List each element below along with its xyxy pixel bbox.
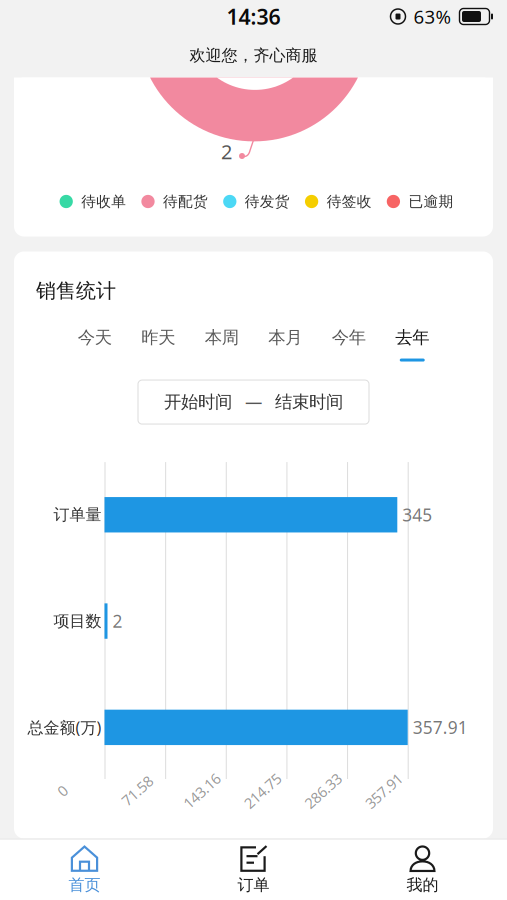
staticText: 357.91 <box>362 781 406 801</box>
staticText: 待配货 <box>163 192 208 210</box>
staticText: 357.91 <box>413 716 468 739</box>
button[interactable]: 本周 <box>190 324 253 364</box>
staticText: 本月 <box>268 327 302 348</box>
button[interactable]: 昨天 <box>126 324 190 364</box>
button[interactable]: 首页 <box>0 839 169 900</box>
button[interactable]: 去年 <box>380 324 444 364</box>
staticText: 14:36 <box>226 2 280 31</box>
staticText: 71.58 <box>119 781 155 801</box>
staticText: 开始时间 <box>164 391 232 413</box>
staticText: 214.75 <box>240 781 284 801</box>
staticText: 首页 <box>68 875 100 895</box>
staticText: 0 <box>58 781 66 801</box>
staticText: 今天 <box>78 327 112 348</box>
staticText: 销售统计 <box>36 278 116 303</box>
staticText: 2 <box>221 138 232 165</box>
staticText: 63% <box>413 4 451 29</box>
button[interactable]: 我的 <box>338 839 507 900</box>
staticText: 待收单 <box>81 192 126 210</box>
staticText: 2 <box>112 610 122 633</box>
staticText: 结束时间 <box>275 391 343 413</box>
staticText: 总金额(万) <box>27 717 101 738</box>
staticText: 345 <box>402 503 432 526</box>
button[interactable]: 今年 <box>317 324 380 364</box>
staticText: 订单 <box>237 875 269 895</box>
staticText: 我的 <box>406 875 438 895</box>
staticText: 本周 <box>205 327 239 348</box>
staticText: 今年 <box>332 327 366 348</box>
staticText: 143.16 <box>180 781 224 801</box>
button[interactable]: 本月 <box>253 324 317 364</box>
staticText: 已逾期 <box>408 192 453 210</box>
staticText: 欢迎您，齐心商服 <box>189 46 317 65</box>
staticText: 项目数 <box>53 611 101 631</box>
staticText: 待签收 <box>327 192 372 210</box>
staticText: — <box>245 391 262 414</box>
button[interactable]: 订单 <box>169 839 338 900</box>
button[interactable]: 今天 <box>63 324 126 364</box>
staticText: 昨天 <box>141 327 175 348</box>
staticText: 286.33 <box>301 781 345 801</box>
staticText: 订单量 <box>53 505 101 525</box>
button[interactable]: 开始时间 <box>138 380 369 424</box>
staticText: 去年 <box>395 327 429 348</box>
staticText: 待发货 <box>245 192 290 210</box>
